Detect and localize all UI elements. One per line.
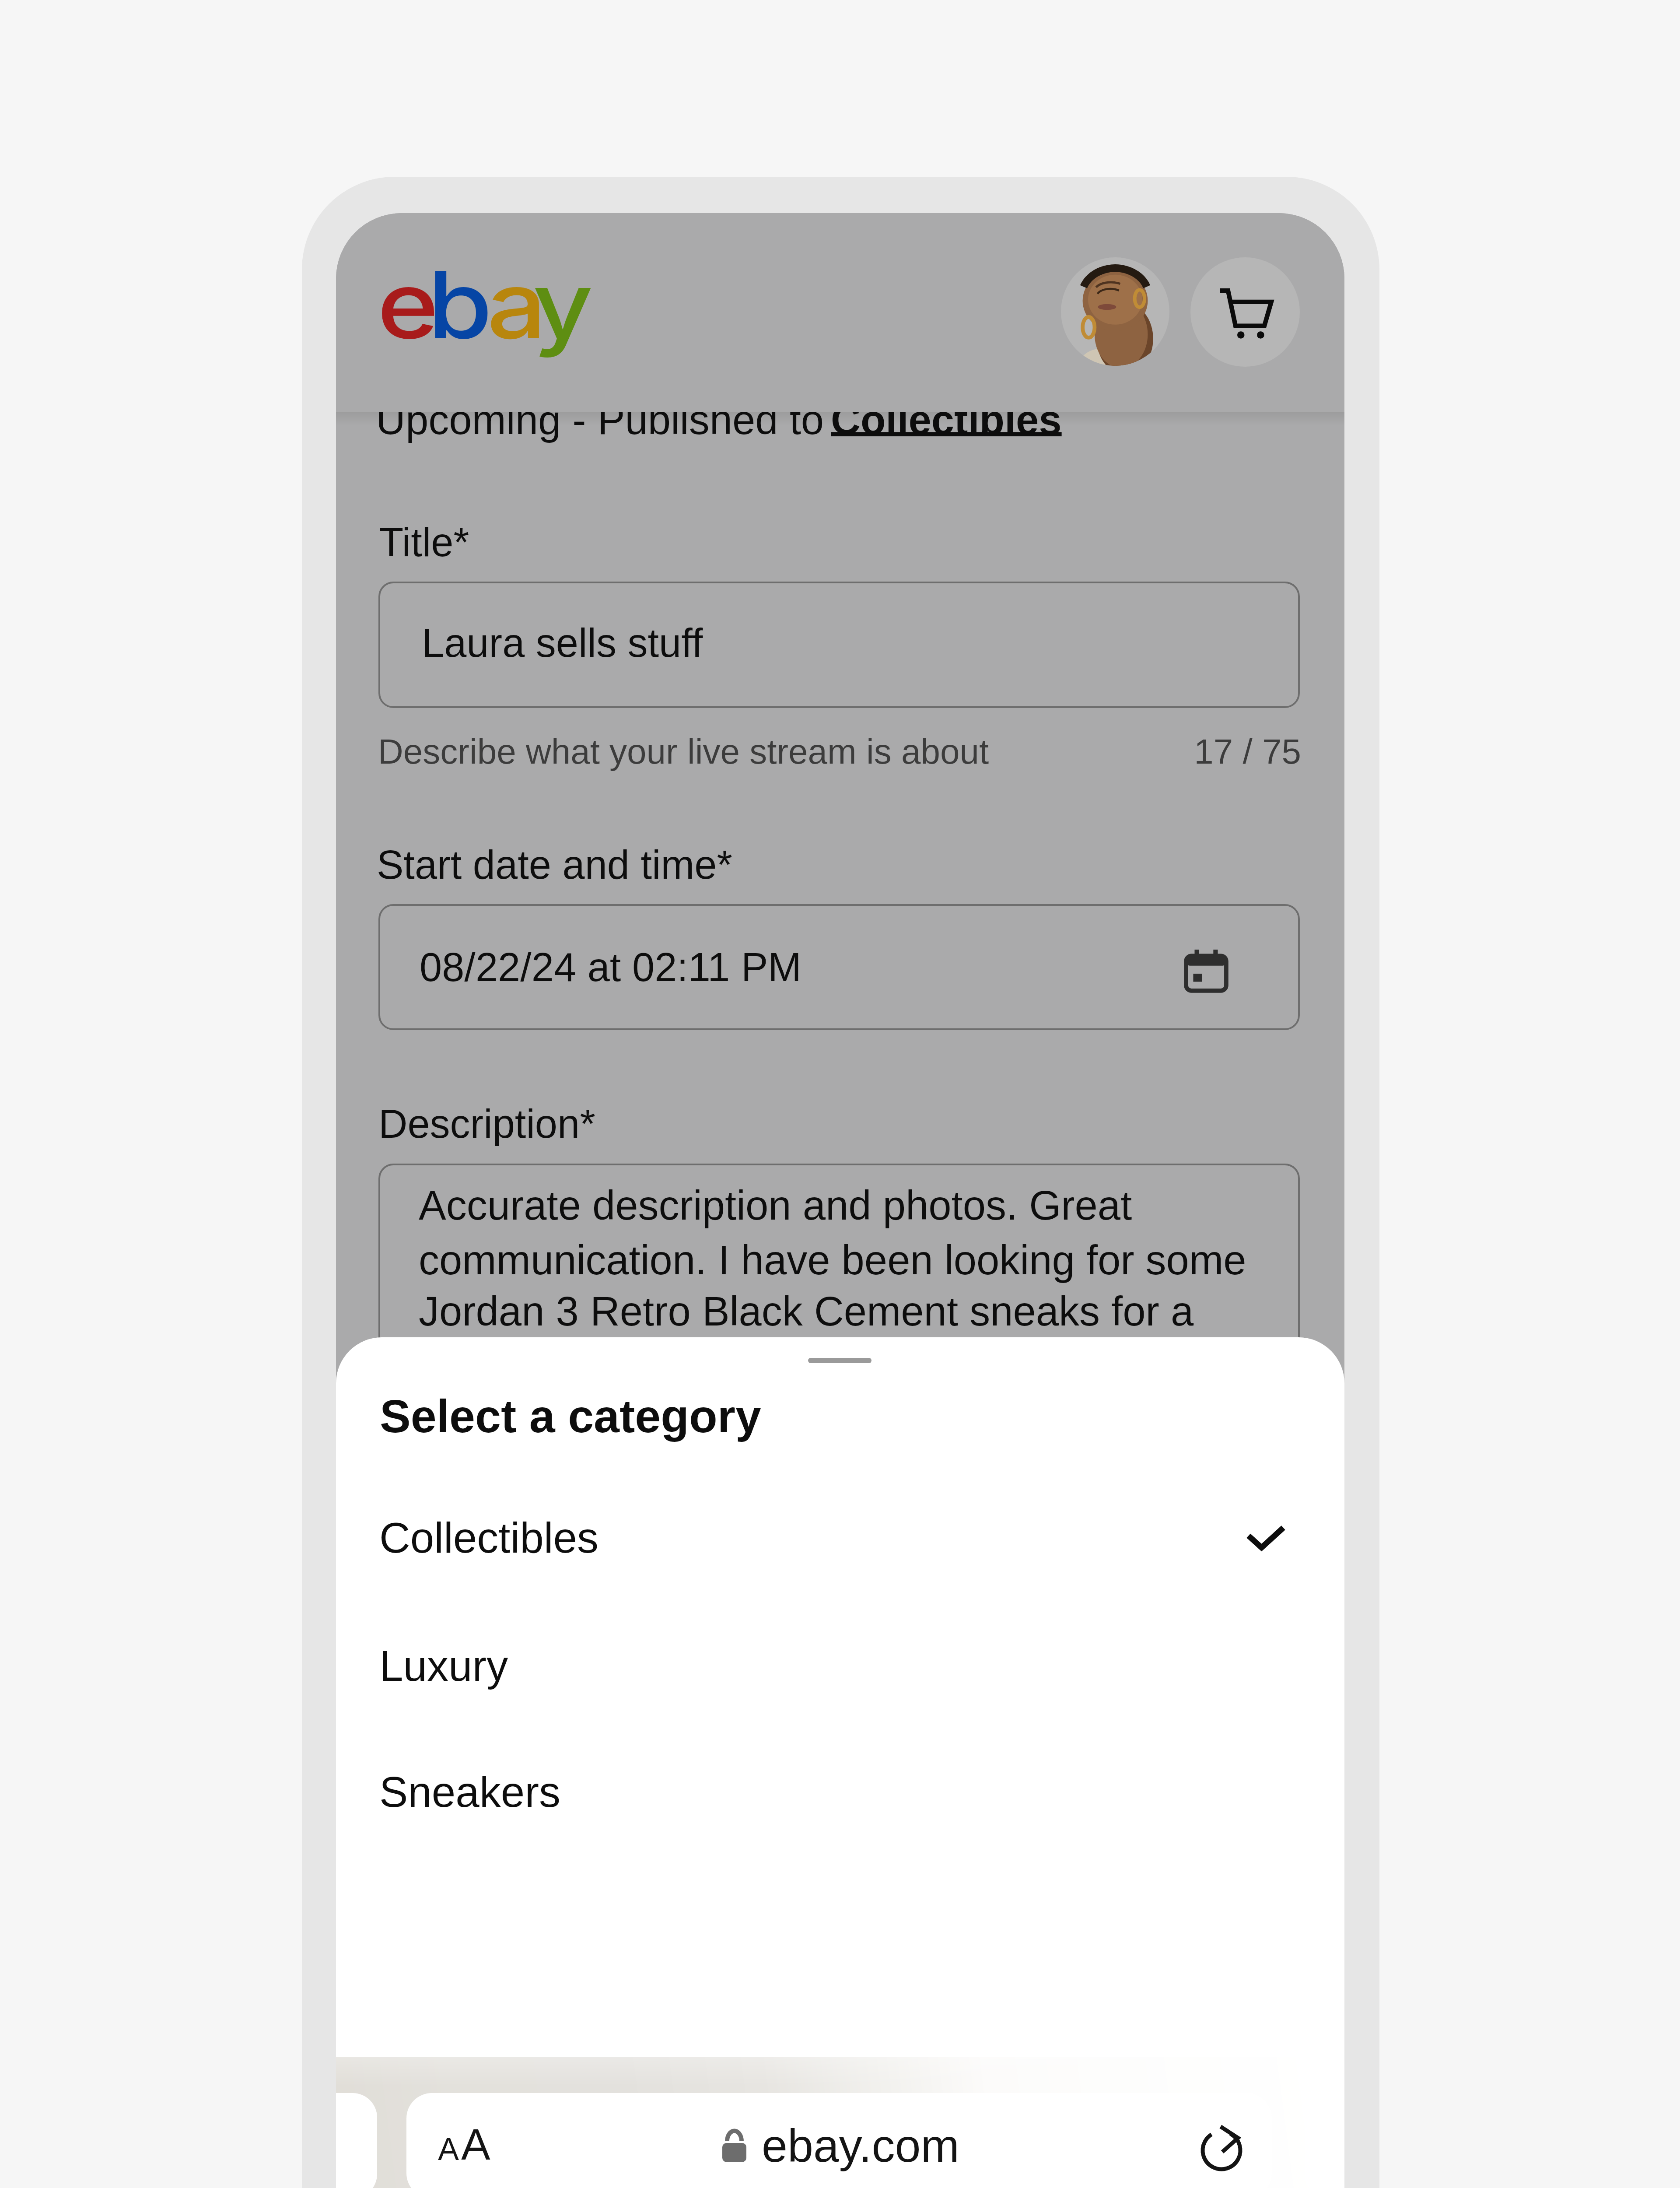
button[interactable]: Sneakers (336, 1705, 1344, 1831)
button[interactable]: Reload (1197, 2112, 1246, 2169)
staticText: 08/22/24 at 02:11 PM (420, 945, 801, 990)
staticText: e (377, 249, 439, 361)
staticText: Luxury (379, 1642, 508, 1690)
staticText: Jordan 3 Retro Black Cement sneaks for a (419, 1288, 1194, 1334)
staticText: b (427, 249, 493, 361)
button[interactable] (378, 1164, 1300, 1444)
button[interactable] (378, 904, 1300, 1030)
staticText: Start date and time* (377, 842, 733, 887)
staticText: Description* (378, 1101, 595, 1147)
staticText: Title* (379, 520, 469, 565)
button[interactable]: Luxury (336, 1579, 1344, 1705)
staticText: ebay.com (762, 2120, 959, 2171)
staticText: A (438, 2132, 459, 2167)
staticText: y (533, 249, 594, 361)
button[interactable]: Collectibles (336, 1451, 1344, 1577)
staticText: Upcoming - Published to (376, 397, 836, 443)
staticText: communication. I have been looking for s… (419, 1237, 1246, 1283)
button[interactable]: eBay home (378, 249, 605, 363)
staticText: Laura sells stuff (422, 621, 703, 666)
staticText: A (461, 2120, 490, 2169)
staticText: Describe what your live stream is about (378, 732, 989, 771)
staticText: Collectibles (831, 397, 1062, 443)
button[interactable]: Account (1061, 257, 1169, 366)
staticText: Select a category (380, 1390, 762, 1442)
button[interactable] (378, 582, 1300, 708)
button[interactable]: Address bar (406, 2093, 1272, 2188)
staticText: Collectibles (379, 1514, 599, 1561)
staticText: Sneakers (379, 1768, 561, 1816)
button[interactable]: Shopping cart (1190, 257, 1300, 367)
staticText: Accurate description and photos. Great (419, 1182, 1132, 1228)
staticText: 17 / 75 (948, 732, 1301, 771)
staticText: a (487, 249, 547, 361)
